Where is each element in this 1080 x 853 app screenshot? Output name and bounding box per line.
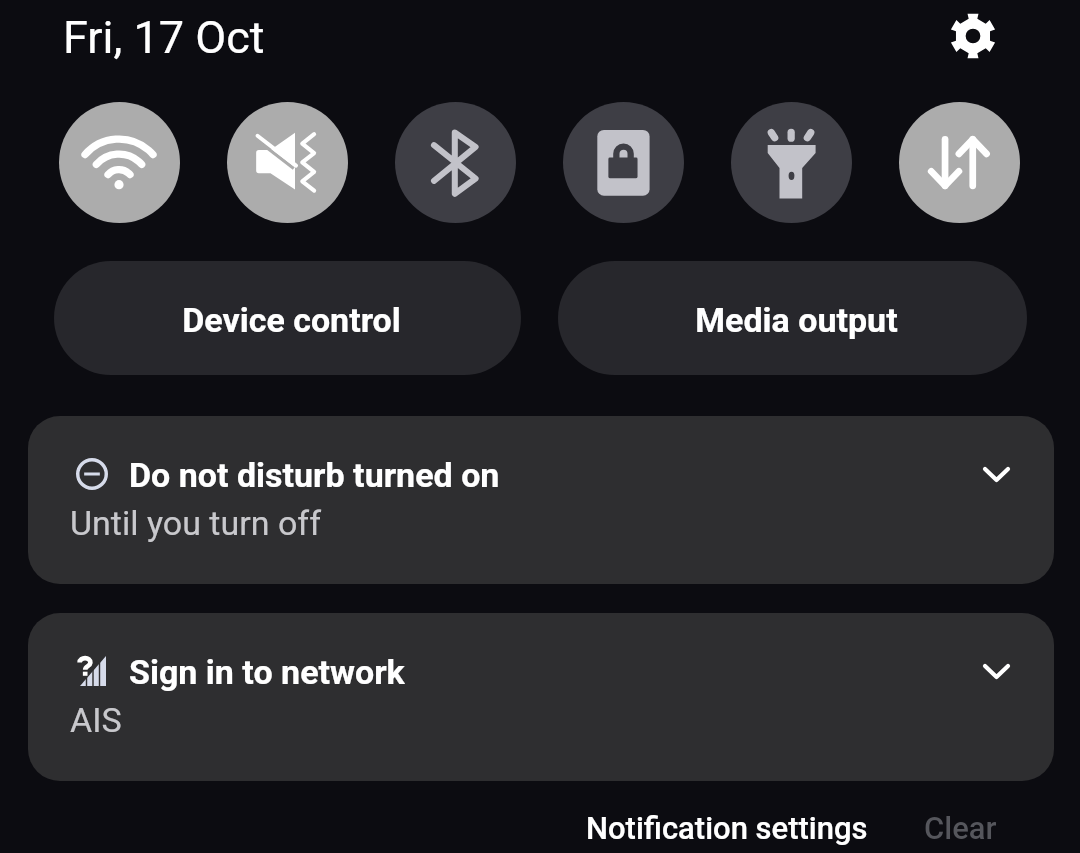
button[interactable]: Flashlight — [731, 102, 852, 223]
button[interactable]: Clear — [916, 802, 1005, 853]
button[interactable]: Do not disturb turned on — [28, 416, 1054, 584]
button[interactable]: Mute — [227, 102, 348, 223]
staticText: Device control — [182, 300, 401, 340]
button[interactable]: Auto rotate — [563, 102, 684, 223]
staticText: Notification settings — [586, 810, 868, 846]
staticText: Clear — [924, 810, 997, 846]
staticText: AIS — [70, 700, 122, 740]
staticText: Fri, 17 Oct — [63, 11, 265, 64]
staticText: Do not disturb turned on — [129, 455, 500, 495]
button[interactable]: Media output — [558, 261, 1027, 375]
button[interactable]: Device control — [54, 261, 521, 375]
button[interactable]: Expand — [950, 428, 1042, 520]
button[interactable]: Bluetooth — [395, 102, 516, 223]
button[interactable]: Expand — [950, 625, 1042, 717]
button[interactable]: Settings — [943, 6, 1003, 66]
button[interactable]: Sign in to network — [28, 613, 1054, 781]
button[interactable]: Notification settings — [578, 802, 876, 853]
staticText: Sign in to network — [129, 652, 405, 692]
staticText: Until you turn off — [70, 503, 321, 543]
button[interactable]: Fri, 17 Oct — [53, 3, 275, 72]
button[interactable]: Wi-Fi — [59, 102, 180, 223]
staticText: Media output — [695, 300, 898, 340]
button[interactable]: Mobile data — [899, 102, 1020, 223]
